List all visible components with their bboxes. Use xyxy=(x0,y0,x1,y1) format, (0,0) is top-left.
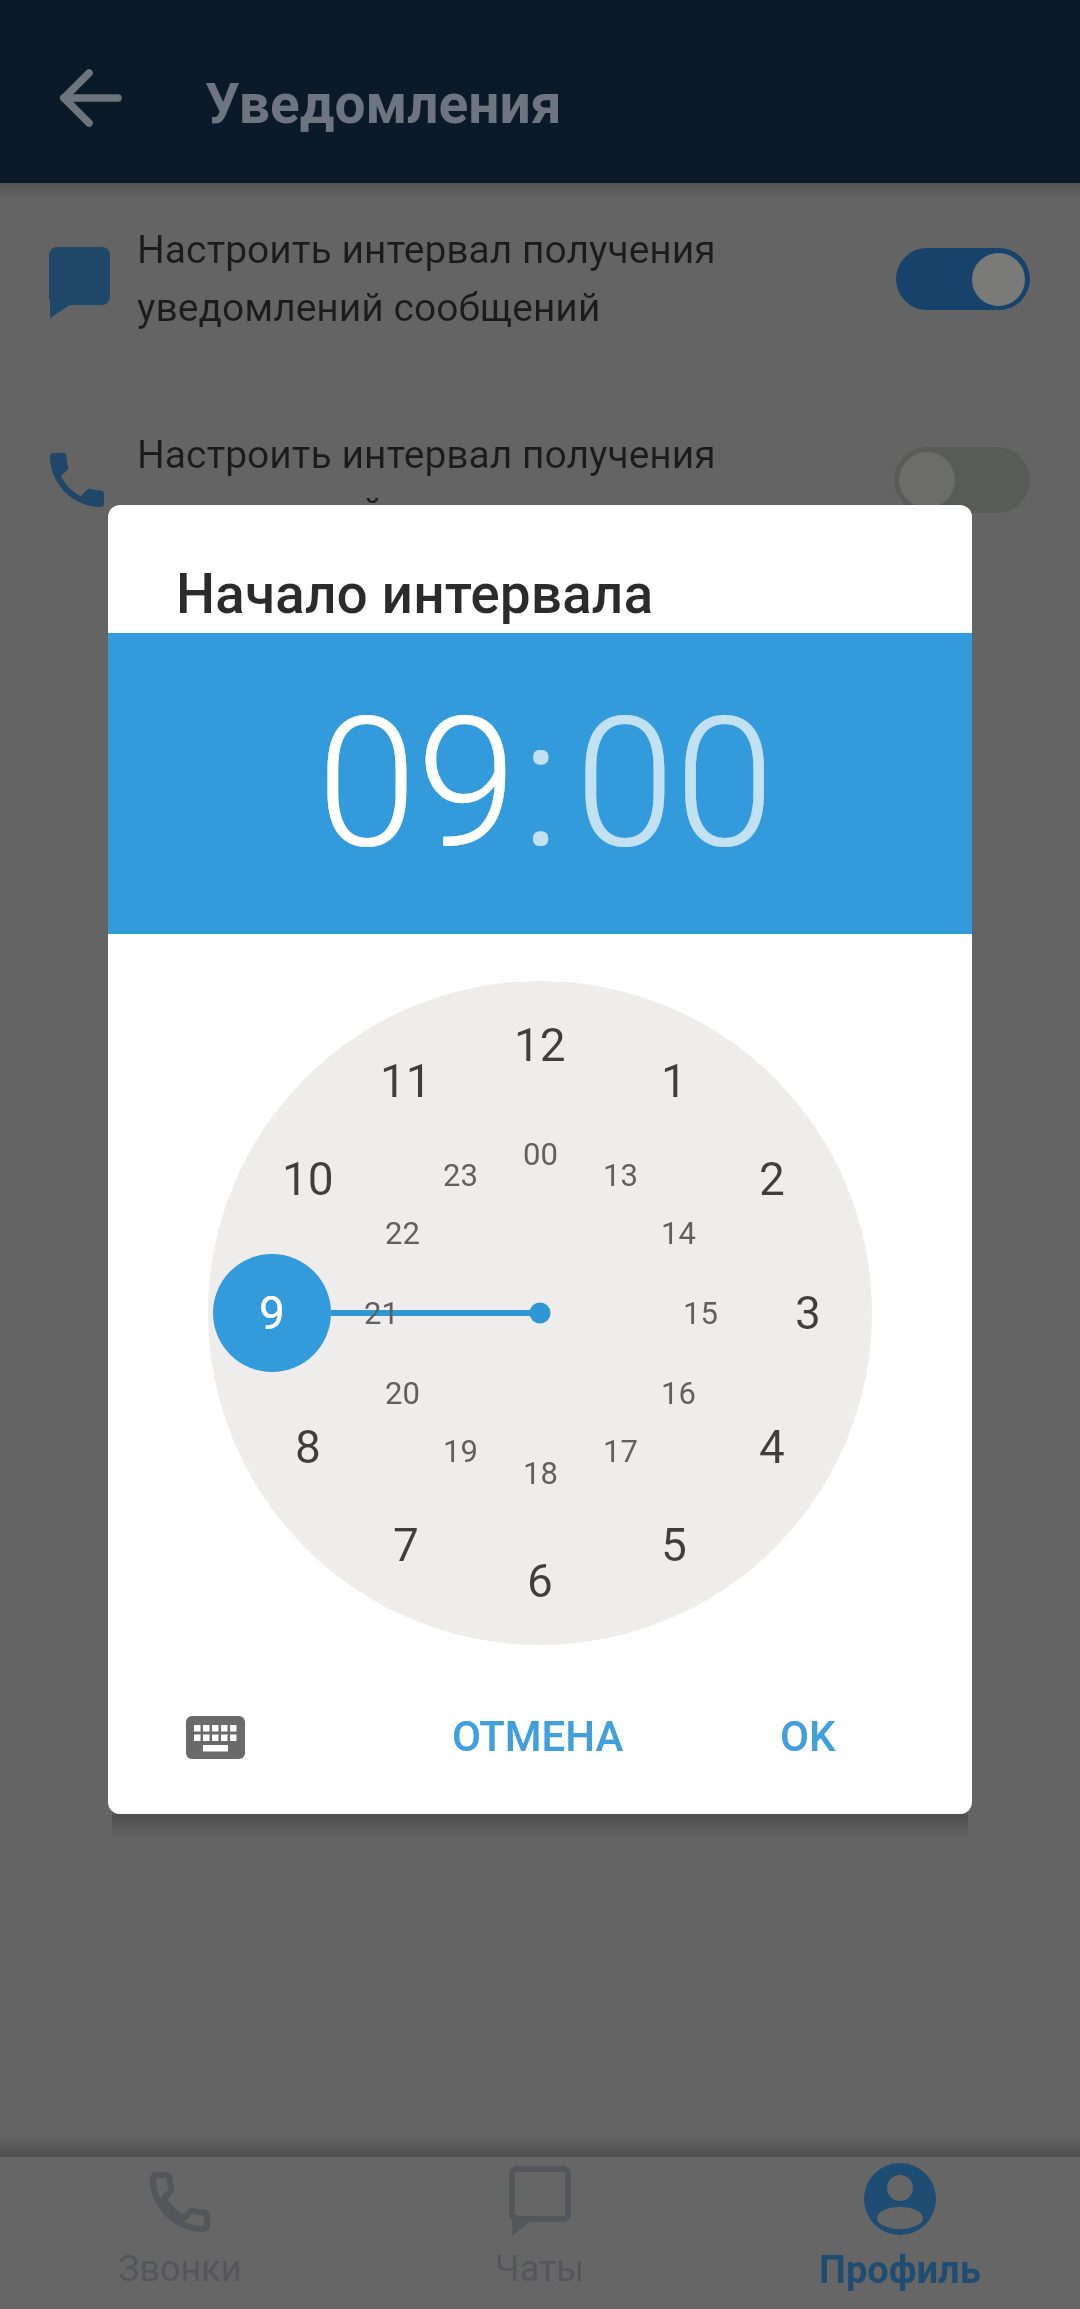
staticText: 10 xyxy=(282,1152,334,1206)
button[interactable]: Профиль xyxy=(720,2157,1080,2309)
staticText: Начало интервала xyxy=(176,562,654,626)
staticText: Звонки xyxy=(118,2248,242,2290)
staticText: Настроить интервал получения xyxy=(137,227,716,273)
staticText: 3 xyxy=(795,1286,821,1340)
staticText: Уведомления xyxy=(205,72,562,136)
button[interactable] xyxy=(0,410,1080,560)
staticText: 4 xyxy=(759,1420,785,1474)
staticText: 20 xyxy=(385,1375,420,1411)
button[interactable] xyxy=(48,55,134,141)
staticText: 16 xyxy=(661,1375,696,1411)
staticText: 18 xyxy=(523,1455,558,1491)
staticText: 5 xyxy=(661,1518,687,1572)
staticText: 1 xyxy=(661,1054,687,1108)
staticText: 19 xyxy=(443,1433,478,1469)
staticText: 14 xyxy=(661,1215,696,1251)
staticText: Настроить интервал получения xyxy=(137,432,716,478)
button[interactable] xyxy=(0,205,1080,355)
button[interactable] xyxy=(170,1699,260,1775)
staticText: Профиль xyxy=(819,2248,981,2293)
staticText: 00 xyxy=(575,678,775,889)
button[interactable] xyxy=(896,248,1030,310)
staticText: 00 xyxy=(523,1136,558,1172)
staticText: 13 xyxy=(603,1157,638,1193)
staticText: ОТМЕНА xyxy=(452,1712,624,1761)
staticText: 23 xyxy=(443,1157,478,1193)
button[interactable]: ОТМЕНА xyxy=(428,1701,648,1771)
button[interactable]: Звонки xyxy=(0,2157,360,2309)
staticText: 21 xyxy=(364,1295,399,1331)
staticText: 7 xyxy=(393,1518,419,1572)
button[interactable] xyxy=(894,447,1030,513)
button[interactable]: OK xyxy=(748,1701,868,1771)
staticText: уведомлений сообщений xyxy=(137,285,601,331)
staticText: OK xyxy=(780,1712,836,1761)
staticText: 2 xyxy=(759,1152,785,1206)
button[interactable]: Чаты xyxy=(360,2157,720,2309)
staticText: 22 xyxy=(385,1215,420,1251)
staticText: 6 xyxy=(527,1554,553,1608)
staticText: 12 xyxy=(514,1018,566,1072)
staticText: 9 xyxy=(259,1286,285,1340)
staticText: 09 xyxy=(317,678,517,889)
staticText: 17 xyxy=(603,1433,638,1469)
staticText: 15 xyxy=(683,1295,718,1331)
staticText: : xyxy=(522,678,560,889)
staticText: уведомлений звонков xyxy=(137,490,546,536)
staticText: 11 xyxy=(380,1054,432,1108)
staticText: 8 xyxy=(295,1420,321,1474)
staticText: Чаты xyxy=(495,2248,585,2290)
